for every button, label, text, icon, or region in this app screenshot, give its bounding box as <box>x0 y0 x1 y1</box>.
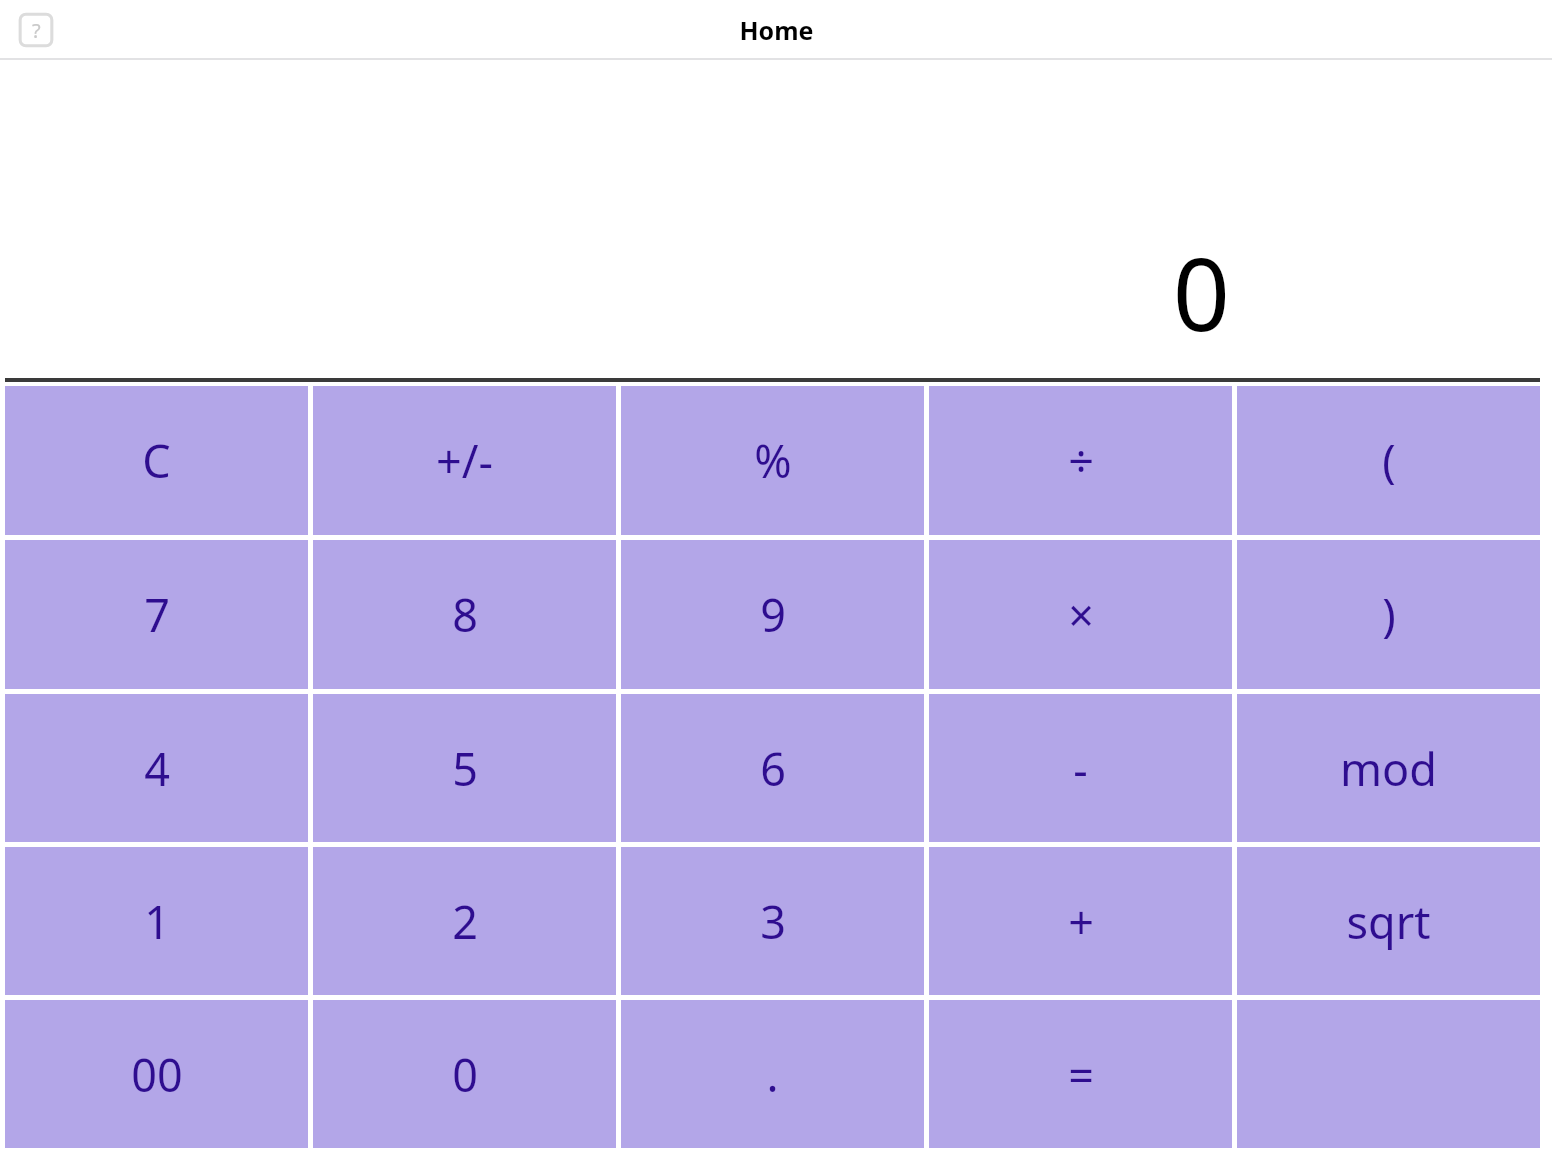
button[interactable]: - <box>929 694 1232 842</box>
staticText: Home <box>739 13 814 47</box>
staticText: + <box>1068 891 1094 952</box>
button[interactable]: . <box>621 1000 924 1148</box>
staticText: 6 <box>760 738 786 799</box>
staticText: ? <box>32 17 41 44</box>
button[interactable]: 5 <box>313 694 616 842</box>
button[interactable]: 0 <box>313 1000 616 1148</box>
button[interactable]: +/- <box>313 386 616 535</box>
staticText: = <box>1068 1044 1094 1105</box>
button[interactable]: 7 <box>5 540 308 689</box>
staticText: mod <box>1340 738 1437 799</box>
staticText: 2 <box>452 891 478 952</box>
button[interactable]: 1 <box>5 847 308 995</box>
staticText: ÷ <box>1068 430 1094 491</box>
staticText: ) <box>1382 584 1396 645</box>
button[interactable]: × <box>929 540 1232 689</box>
button[interactable]: + <box>929 847 1232 995</box>
button[interactable]: ( <box>1237 386 1540 535</box>
staticText: 00 <box>131 1044 183 1105</box>
staticText: C <box>142 430 171 491</box>
button[interactable]: 6 <box>621 694 924 842</box>
staticText: 9 <box>760 584 786 645</box>
button[interactable]: 2 <box>313 847 616 995</box>
staticText: 4 <box>144 738 170 799</box>
button[interactable]: 3 <box>621 847 924 995</box>
button[interactable]: 00 <box>5 1000 308 1148</box>
staticText: - <box>1073 738 1088 799</box>
staticText: × <box>1068 584 1094 645</box>
staticText: % <box>754 430 792 491</box>
staticText: 7 <box>144 584 170 645</box>
staticText: 8 <box>452 584 478 645</box>
staticText: 0 <box>1172 224 1230 360</box>
button[interactable]: 8 <box>313 540 616 689</box>
button[interactable]: Menu <box>18 12 54 48</box>
staticText: 5 <box>452 738 478 799</box>
staticText: ( <box>1382 430 1396 491</box>
staticText: +/- <box>436 430 493 491</box>
button[interactable]: 4 <box>5 694 308 842</box>
button[interactable]: = <box>929 1000 1232 1148</box>
button[interactable]: ) <box>1237 540 1540 689</box>
button[interactable]: C <box>5 386 308 535</box>
staticText: . <box>766 1044 779 1105</box>
button[interactable]: 9 <box>621 540 924 689</box>
button[interactable]: ÷ <box>929 386 1232 535</box>
staticText: 3 <box>760 891 786 952</box>
button[interactable]: mod <box>1237 694 1540 842</box>
staticText: 0 <box>452 1044 478 1105</box>
button[interactable]: sqrt <box>1237 847 1540 995</box>
button[interactable]: % <box>621 386 924 535</box>
staticText: sqrt <box>1346 891 1431 952</box>
staticText: 1 <box>144 891 170 952</box>
